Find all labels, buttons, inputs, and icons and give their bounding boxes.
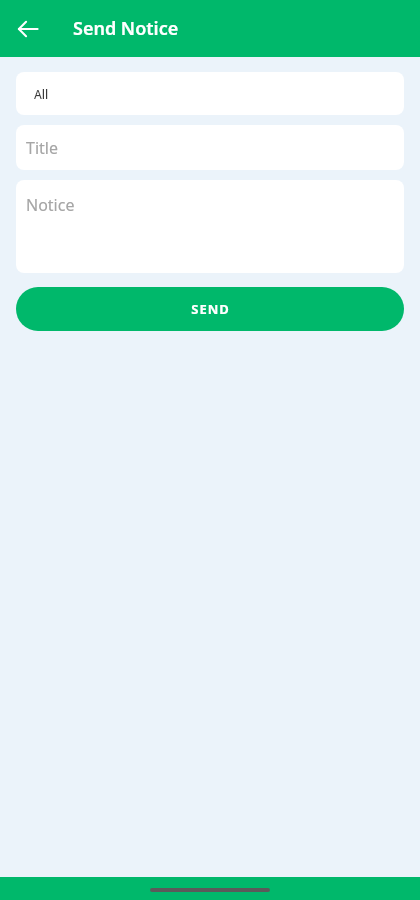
button[interactable]: All bbox=[16, 72, 404, 115]
staticText: Notice bbox=[26, 194, 75, 216]
button[interactable]: Back bbox=[16, 17, 40, 41]
staticText: All bbox=[34, 86, 49, 102]
staticText: Send Notice bbox=[73, 16, 179, 41]
button[interactable]: Notice bbox=[16, 180, 404, 273]
button[interactable]: SEND bbox=[16, 287, 404, 331]
staticText: SEND bbox=[191, 300, 230, 318]
staticText: Title bbox=[26, 137, 58, 159]
button[interactable]: Title bbox=[16, 125, 404, 170]
